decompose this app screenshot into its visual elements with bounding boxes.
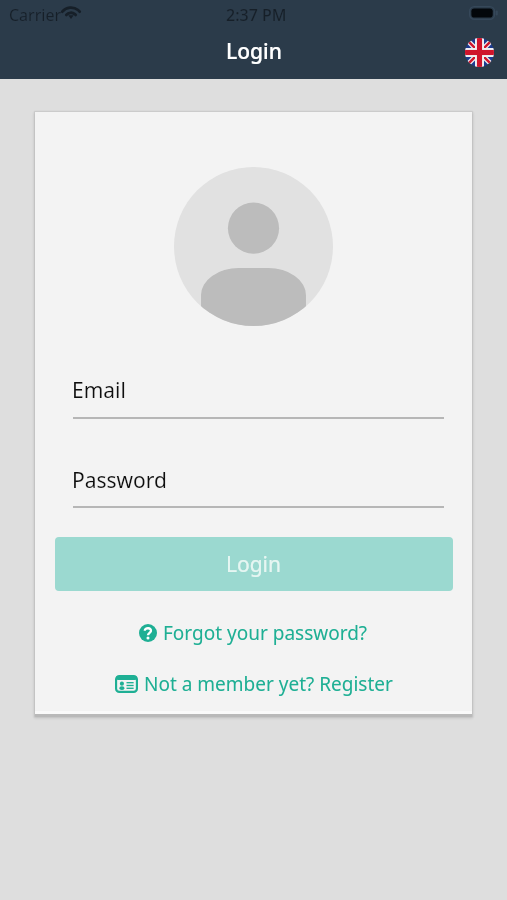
staticText: Password (72, 466, 167, 495)
staticText: Email (72, 376, 126, 405)
staticText: Login (226, 37, 282, 66)
staticText: Carrier (9, 4, 62, 26)
button[interactable]: Forgot your password? (35, 618, 472, 648)
staticText: Forgot your password? (163, 620, 368, 646)
button[interactable]: Login (55, 537, 453, 591)
staticText: Login (226, 550, 282, 579)
staticText: 2:37 PM (226, 4, 287, 26)
button[interactable]: Change language (465, 38, 494, 67)
staticText: Not a member yet? Register (144, 671, 393, 697)
button[interactable]: Not a member yet? Register (35, 669, 472, 699)
